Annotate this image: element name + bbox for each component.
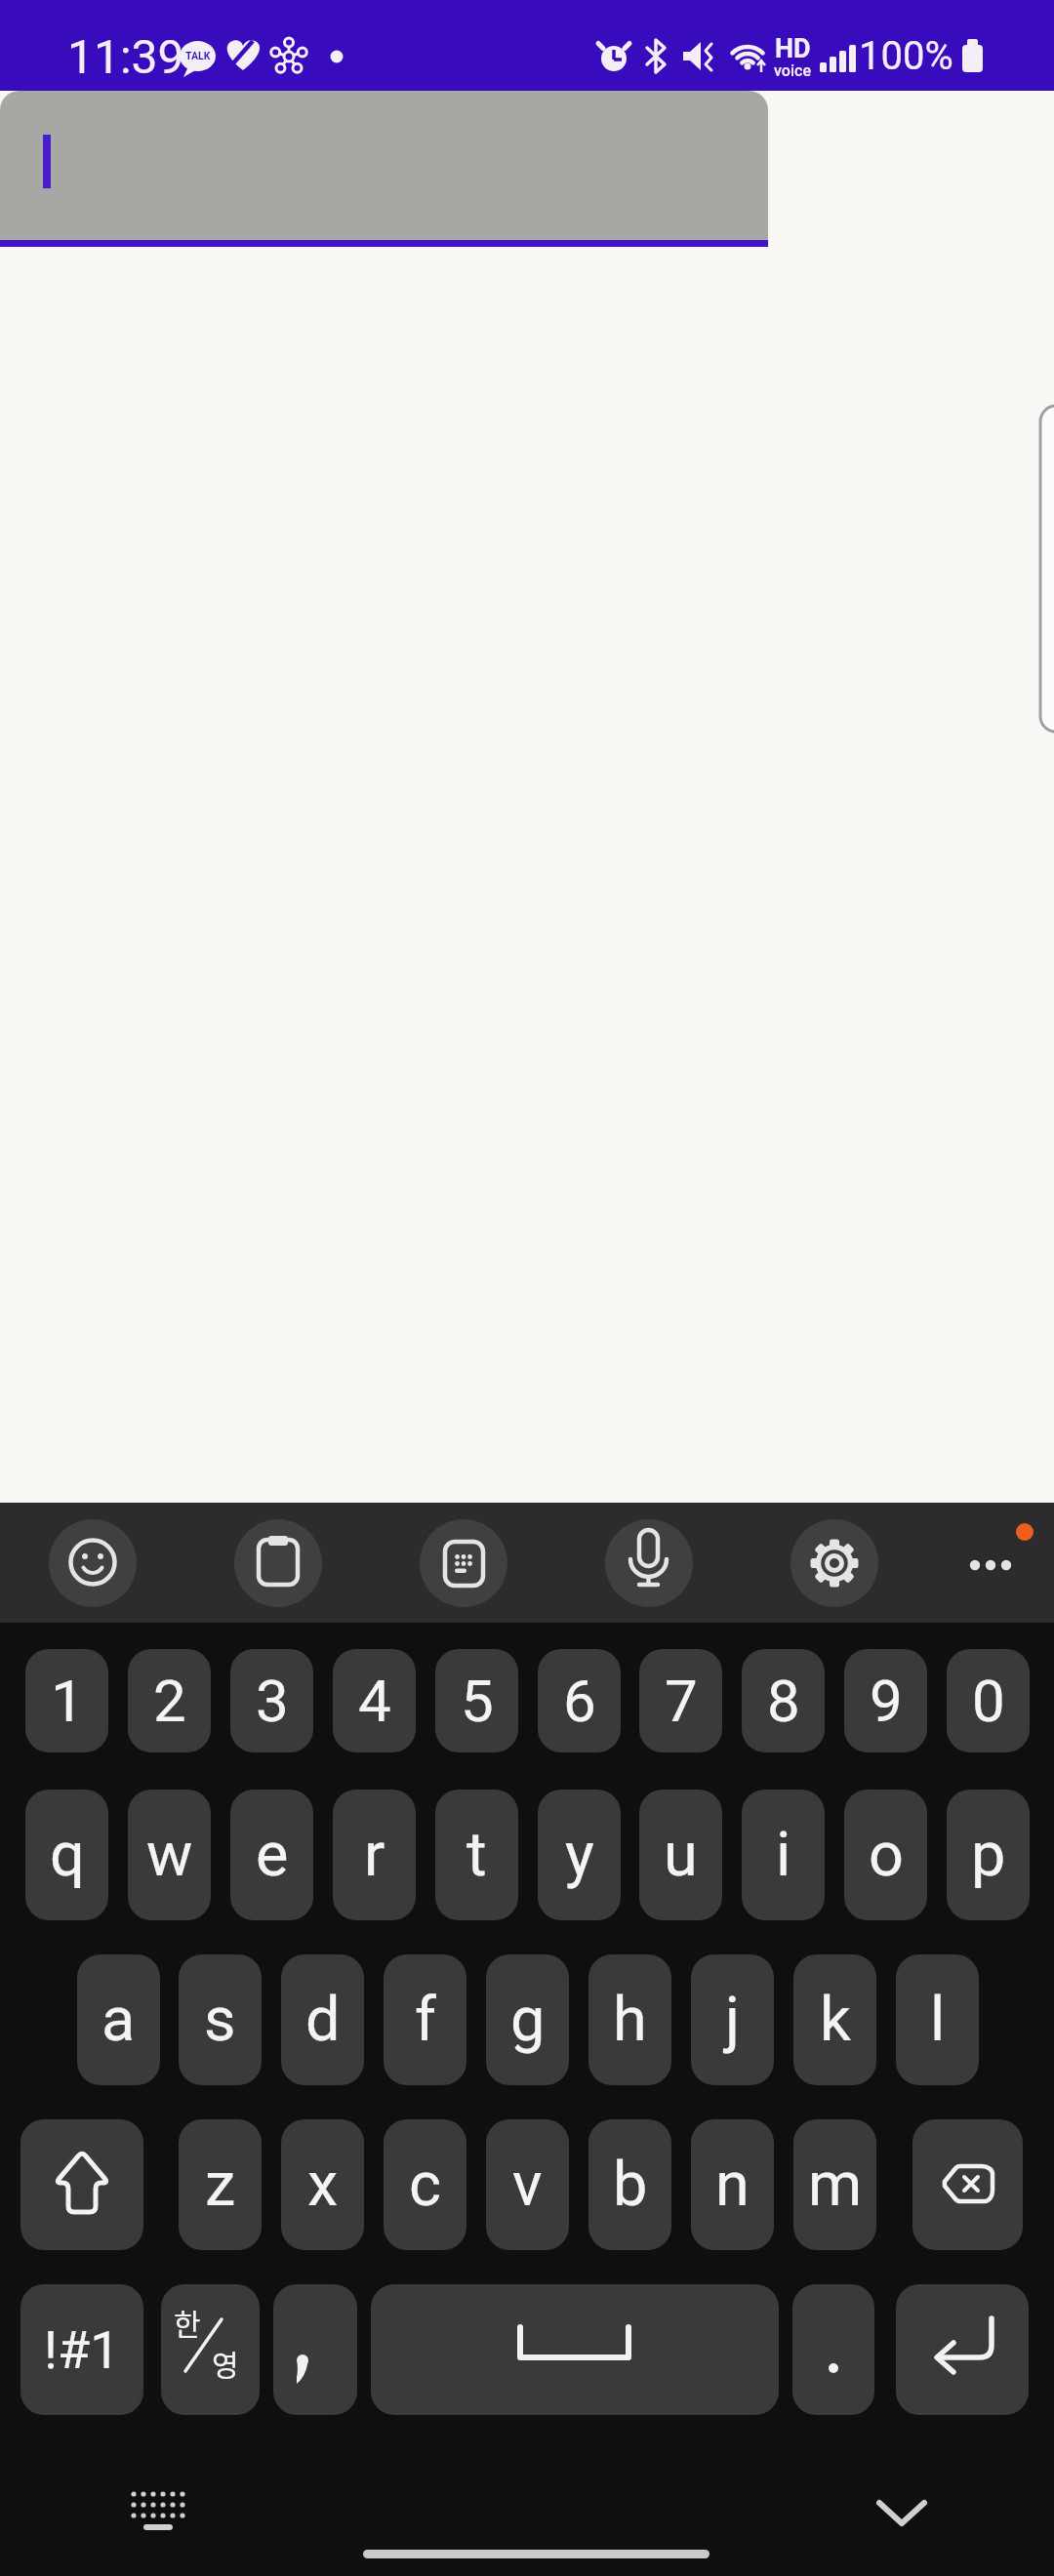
button[interactable]	[912, 2119, 1023, 2250]
button[interactable]	[896, 2284, 1029, 2415]
button[interactable]: 1	[25, 1649, 108, 1752]
staticText: a	[101, 1984, 136, 2056]
staticText: h	[613, 1984, 647, 2056]
staticText: w	[146, 1819, 193, 1891]
button[interactable]: e	[230, 1790, 313, 1920]
button[interactable]: r	[333, 1790, 416, 1920]
button[interactable]: 8	[742, 1649, 825, 1752]
button[interactable]: q	[25, 1790, 108, 1920]
staticText: z	[205, 2149, 236, 2221]
staticText: v	[512, 2149, 543, 2221]
button[interactable]: b	[588, 2119, 671, 2250]
staticText: 2	[153, 1667, 186, 1735]
staticText: 1	[51, 1667, 84, 1735]
button[interactable]: 5	[435, 1649, 518, 1752]
staticText: k	[820, 1984, 851, 2056]
button[interactable]: 2	[128, 1649, 211, 1752]
button[interactable]: 0	[947, 1649, 1030, 1752]
staticText: 8	[767, 1667, 800, 1735]
button[interactable]: h	[588, 1954, 671, 2085]
staticText: g	[510, 1984, 546, 2056]
button[interactable]: l	[896, 1954, 979, 2085]
button[interactable]: z	[179, 2119, 262, 2250]
button[interactable]	[0, 91, 768, 240]
staticText: 4	[358, 1667, 391, 1735]
button[interactable]: w	[128, 1790, 211, 1920]
staticText: 7	[665, 1667, 698, 1735]
button[interactable]	[605, 1519, 693, 1607]
button[interactable]: d	[281, 1954, 364, 2085]
button[interactable]: n	[691, 2119, 774, 2250]
button[interactable]	[420, 1519, 507, 1607]
staticText: voice	[774, 61, 811, 80]
staticText: u	[664, 1819, 698, 1891]
button[interactable]	[792, 2284, 874, 2415]
staticText: e	[256, 1819, 289, 1891]
button[interactable]: 7	[639, 1649, 722, 1752]
button[interactable]	[371, 2284, 779, 2415]
staticText: i	[776, 1819, 791, 1891]
button[interactable]: k	[793, 1954, 876, 2085]
staticText: 0	[972, 1667, 1005, 1735]
button[interactable]	[49, 1519, 137, 1607]
staticText: f	[415, 1984, 436, 2056]
button[interactable]: 4	[333, 1649, 416, 1752]
button[interactable]: m	[793, 2119, 876, 2250]
staticText: t	[466, 1819, 487, 1891]
staticText: y	[565, 1819, 594, 1891]
button[interactable]: g	[486, 1954, 569, 2085]
button[interactable]	[117, 2478, 199, 2547]
staticText: d	[305, 1984, 341, 2056]
button[interactable]: 6	[538, 1649, 621, 1752]
staticText: j	[725, 1984, 741, 2056]
button[interactable]: 9	[844, 1649, 927, 1752]
staticText: n	[715, 2149, 750, 2221]
button[interactable]	[20, 2119, 143, 2250]
staticText: TALK	[185, 50, 211, 61]
staticText: b	[613, 2149, 648, 2221]
staticText: s	[204, 1984, 236, 2056]
staticText: p	[971, 1819, 1006, 1891]
staticText: 100%	[859, 33, 953, 79]
button[interactable]: !#1	[20, 2284, 143, 2415]
button[interactable]: p	[947, 1790, 1030, 1920]
button[interactable]: x	[281, 2119, 364, 2250]
staticText: c	[409, 2149, 441, 2221]
button[interactable]: i	[742, 1790, 825, 1920]
button[interactable]: y	[538, 1790, 621, 1920]
staticText: l	[930, 1984, 946, 2056]
button[interactable]	[790, 1519, 878, 1607]
button[interactable]	[865, 2478, 939, 2541]
button[interactable]: a	[77, 1954, 160, 2085]
button[interactable]: c	[384, 2119, 466, 2250]
staticText: HD	[775, 33, 811, 64]
button[interactable]: j	[691, 1954, 774, 2085]
button[interactable]: 3	[230, 1649, 313, 1752]
staticText: r	[364, 1819, 385, 1891]
staticText: 6	[563, 1667, 596, 1735]
staticText: o	[869, 1819, 904, 1891]
button[interactable]: u	[639, 1790, 722, 1920]
button[interactable]: s	[179, 1954, 262, 2085]
button[interactable]: o	[844, 1790, 927, 1920]
staticText: 11:39	[67, 29, 184, 82]
staticText: 5	[461, 1667, 494, 1735]
staticText: m	[808, 2149, 863, 2221]
button[interactable]	[234, 1519, 322, 1607]
button[interactable]: t	[435, 1790, 518, 1920]
staticText: !#1	[44, 2319, 120, 2381]
staticText: 3	[256, 1667, 289, 1735]
staticText: x	[307, 2149, 339, 2221]
staticText: 9	[870, 1667, 903, 1735]
button[interactable]: f	[384, 1954, 466, 2085]
staticText: 영	[212, 2342, 239, 2381]
button[interactable]	[161, 2284, 260, 2415]
button[interactable]: v	[486, 2119, 569, 2250]
button[interactable]	[273, 2284, 357, 2415]
staticText: q	[50, 1819, 85, 1891]
button[interactable]	[952, 1538, 1022, 1592]
staticText: 한	[174, 2301, 201, 2340]
